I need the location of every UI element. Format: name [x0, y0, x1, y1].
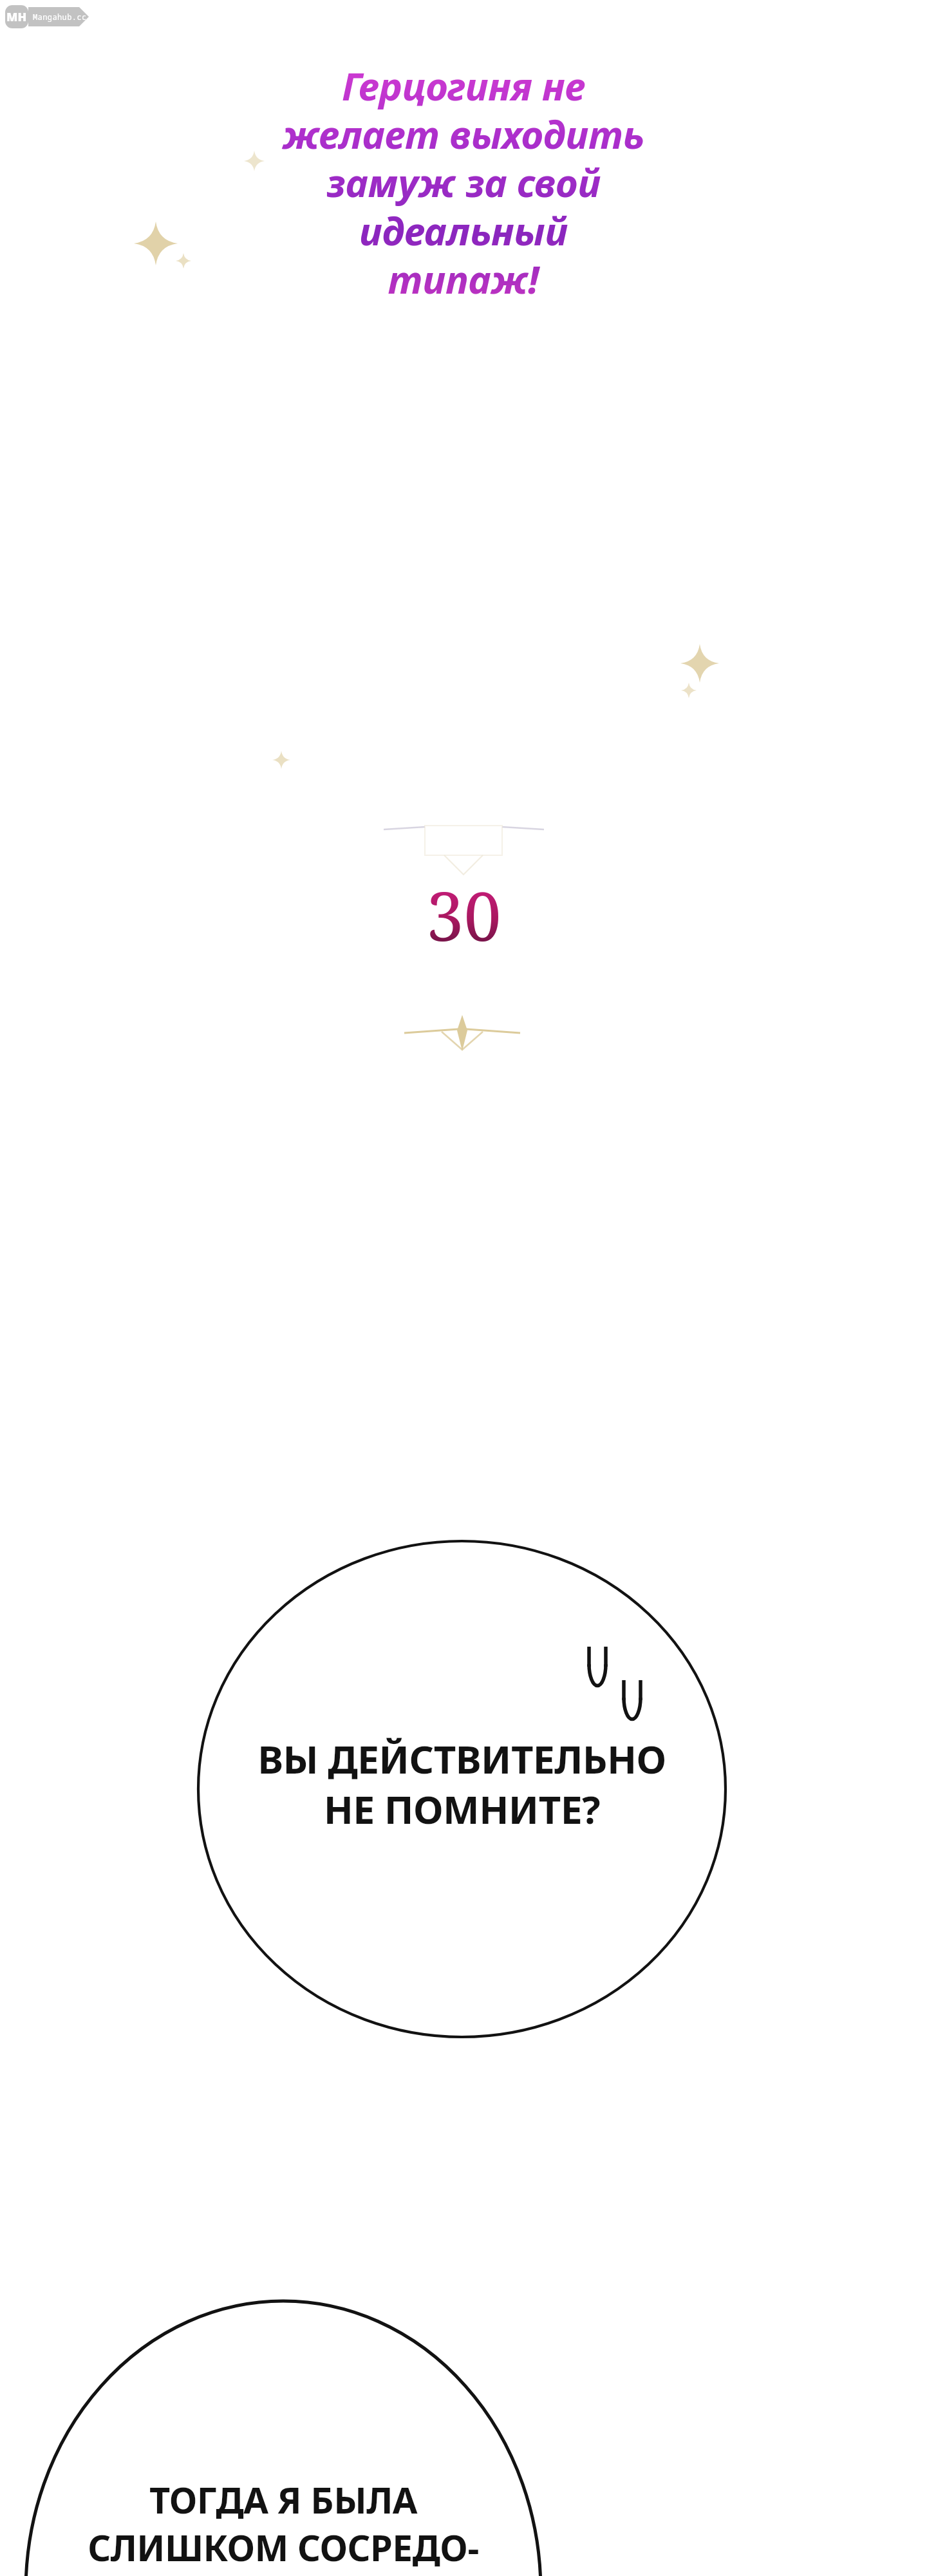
staticText: Mangahub.cc [33, 12, 87, 22]
staticText: 30 [426, 869, 501, 961]
button[interactable]: ВЫ ДЕЙСТВИТЕЛЬНО НЕ ПОМНИТЕ? [198, 1732, 726, 1835]
staticText: ТОГДА Я БЫЛА СЛИШКОМ СОСРЕДО- ТОЧЕНА НА … [88, 2475, 479, 2576]
staticText: Герцогиня не желает выходить замуж за св… [9, 59, 918, 305]
staticText: MH [6, 9, 27, 25]
button[interactable]: Mangahub.cc watermark [5, 5, 89, 28]
staticText: ВЫ ДЕЙСТВИТЕЛЬНО НЕ ПОМНИТЕ? [257, 1732, 666, 1835]
button[interactable]: ТОГДА Я БЫЛА СЛИШКОМ СОСРЕДО- ТОЧЕНА НА … [26, 2475, 541, 2576]
